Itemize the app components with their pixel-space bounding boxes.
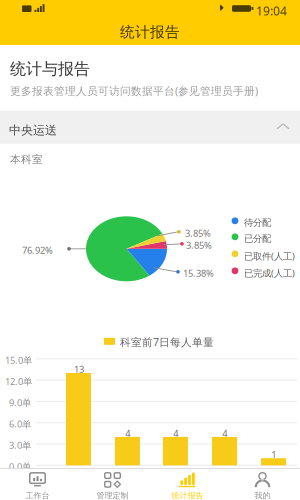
staticText: 4 — [222, 427, 227, 439]
staticText: 工作台 — [25, 491, 49, 500]
staticText: 中央运送 — [9, 123, 57, 137]
staticText: 我的 — [254, 491, 270, 500]
staticText: 更多报表管理人员可访问数据平台(参见管理员手册) — [10, 84, 258, 98]
staticText: 76.92% — [22, 244, 53, 256]
staticText: 12.0单 — [5, 375, 32, 387]
staticText: 科室前7日每人单量 — [120, 335, 214, 349]
button[interactable]: 管理定制 — [75, 468, 150, 500]
staticText: 13 — [74, 363, 84, 375]
staticText: 3.85% — [186, 239, 212, 251]
staticText: 1 — [271, 448, 276, 461]
staticText: 已完成(人工) — [244, 267, 295, 279]
staticText: 3.85% — [185, 227, 211, 239]
staticText: 9.0单 — [9, 396, 31, 409]
staticText: 6.0单 — [9, 418, 31, 430]
staticText: 已分配 — [244, 233, 271, 244]
button[interactable]: 我的 — [225, 468, 300, 500]
staticText: 统计与报告 — [10, 59, 90, 79]
staticText: 统计报告 — [120, 23, 180, 41]
staticText: 4 — [125, 427, 130, 439]
staticText: 3.0单 — [9, 439, 31, 451]
button[interactable]: 中央运送 — [0, 111, 300, 144]
staticText: 已取件(人工) — [244, 250, 295, 262]
staticText: 4 — [173, 427, 178, 439]
staticText: 待分配 — [244, 217, 271, 228]
staticText: 19:04 — [256, 3, 287, 19]
staticText: 统计报告 — [171, 491, 203, 500]
staticText: 15.0单 — [5, 354, 32, 366]
staticText: 0.0单 — [9, 460, 31, 473]
staticText: 15.38% — [183, 267, 214, 279]
staticText: 本科室 — [10, 153, 43, 166]
button[interactable]: 工作台 — [0, 468, 75, 500]
button[interactable]: 统计报告 — [150, 468, 225, 500]
staticText: 管理定制 — [96, 491, 128, 500]
